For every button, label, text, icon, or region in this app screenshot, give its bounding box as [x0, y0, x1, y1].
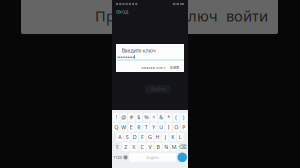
staticText: X	[132, 143, 135, 150]
staticText: O	[174, 124, 178, 131]
staticText: T	[145, 124, 148, 131]
staticText: E	[130, 124, 133, 131]
staticText: @	[121, 114, 126, 121]
staticText: ⌫	[179, 144, 187, 150]
staticText: W	[121, 124, 126, 131]
staticText: (	[175, 114, 177, 121]
staticText: Q	[114, 124, 118, 131]
staticText: N	[164, 143, 168, 150]
staticText: *	[167, 114, 170, 121]
button[interactable]: ВОЙТИ	[170, 66, 179, 70]
staticText: ^	[152, 114, 155, 121]
staticText: V	[148, 143, 151, 150]
staticText: Y	[152, 124, 155, 131]
staticText: ВОЙТИ	[170, 66, 179, 70]
staticText: P	[182, 124, 185, 131]
staticText: F	[141, 133, 144, 141]
staticText: ?123	[113, 155, 121, 160]
staticText: &	[159, 114, 163, 121]
staticText: U	[159, 124, 163, 131]
staticText: Приватный ключ войти	[95, 6, 268, 25]
staticText: I	[168, 124, 170, 131]
staticText: ⇧	[115, 144, 119, 150]
staticText: !	[116, 114, 117, 121]
staticText: H	[156, 133, 160, 141]
staticText: B	[157, 143, 160, 150]
staticText: Z	[124, 143, 127, 150]
staticText: S	[126, 133, 129, 141]
staticText: C	[140, 143, 143, 150]
staticText: %	[144, 114, 148, 121]
staticText: M	[172, 143, 177, 150]
staticText: English	[147, 155, 159, 160]
staticText: #	[130, 114, 133, 121]
staticText: D	[133, 133, 137, 141]
staticText: R	[137, 124, 140, 131]
staticText: J	[165, 133, 166, 141]
staticText: G	[148, 133, 152, 141]
button[interactable]: ПОКАЗАТЬ КЛЮЧ	[140, 66, 165, 70]
staticText: Введите ключ	[121, 47, 155, 54]
staticText: Войти	[151, 85, 165, 93]
staticText: )	[183, 114, 185, 121]
staticText: L	[179, 133, 182, 141]
staticText: K	[171, 133, 174, 141]
staticText: $	[137, 114, 140, 121]
staticText: ПОКАЗАТЬ КЛЮЧ	[140, 66, 165, 70]
staticText: A	[118, 133, 121, 141]
staticText: Вход	[116, 8, 128, 15]
